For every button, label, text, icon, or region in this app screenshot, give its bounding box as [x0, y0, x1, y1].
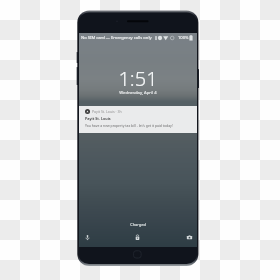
button[interactable]: Voice assistant [81, 231, 94, 244]
staticText: Wednesday, April 4 [119, 90, 157, 96]
staticText: 1:51 [118, 65, 158, 92]
button[interactable]: Payit St. Louis · 3h [79, 106, 197, 133]
staticText: Charged [79, 222, 197, 227]
button[interactable]: Camera [183, 231, 196, 244]
staticText: You have a new property tax bill - let's… [85, 123, 173, 128]
staticText: Payit St. Louis · 3h [92, 109, 122, 114]
staticText: 100% [178, 35, 189, 41]
staticText: No SIM card — Emergency calls only [81, 35, 152, 41]
staticText: Payit St. Louis [85, 116, 111, 121]
button[interactable]: Unlock [131, 231, 144, 244]
